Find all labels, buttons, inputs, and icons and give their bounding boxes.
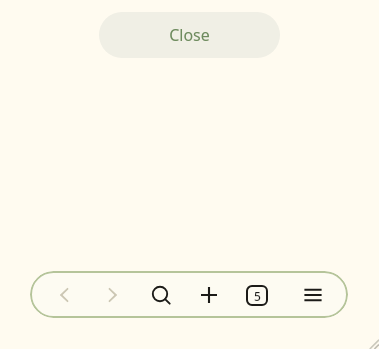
staticText: 5 <box>254 288 261 304</box>
button[interactable]: Forward <box>95 278 129 312</box>
button[interactable]: Menu <box>296 278 330 312</box>
button[interactable]: Tabs, 5 open <box>240 278 274 312</box>
button[interactable]: Search <box>144 278 178 312</box>
staticText: Close <box>169 24 210 46</box>
button[interactable]: Close <box>99 12 280 58</box>
button[interactable]: Back <box>48 278 82 312</box>
button[interactable]: New tab <box>192 278 226 312</box>
